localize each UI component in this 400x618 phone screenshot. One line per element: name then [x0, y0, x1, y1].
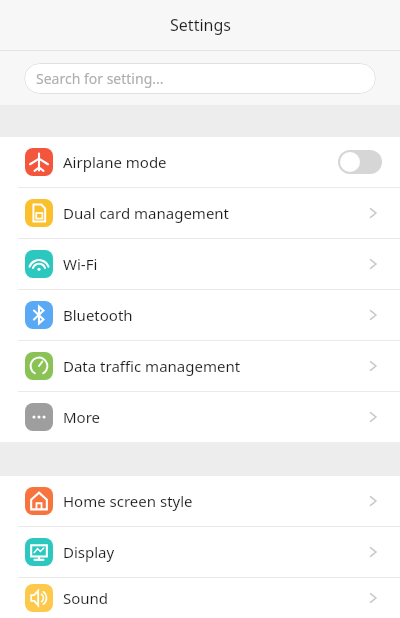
button[interactable]: Data traffic management: [0, 341, 400, 391]
button[interactable]: Home screen style: [0, 476, 400, 526]
button[interactable]: Dual card management: [0, 188, 400, 238]
staticText: Dual card management: [63, 203, 364, 223]
staticText: Search for setting...: [36, 69, 164, 88]
button[interactable]: Wi-Fi: [0, 239, 400, 289]
button[interactable]: More: [0, 392, 400, 442]
staticText: Bluetooth: [63, 305, 364, 325]
staticText: Sound: [63, 588, 364, 608]
button[interactable]: Airplane mode toggle: [338, 150, 382, 174]
button[interactable]: Display: [0, 527, 400, 577]
staticText: Airplane mode: [63, 152, 338, 172]
button[interactable]: Search for setting...: [24, 63, 376, 94]
staticText: Data traffic management: [63, 356, 364, 376]
staticText: Display: [63, 542, 364, 562]
staticText: Settings: [170, 14, 231, 36]
staticText: Wi-Fi: [63, 254, 364, 274]
staticText: More: [63, 407, 364, 427]
button[interactable]: Airplane mode: [0, 137, 400, 187]
button[interactable]: Bluetooth: [0, 290, 400, 340]
staticText: Home screen style: [63, 491, 364, 511]
button[interactable]: Sound: [0, 578, 400, 618]
